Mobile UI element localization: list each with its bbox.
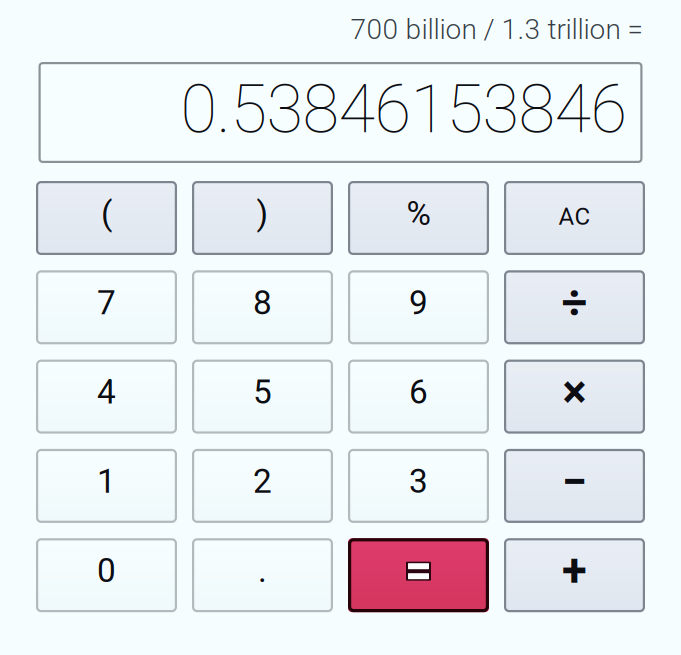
button[interactable]: 3 [348, 449, 489, 523]
button[interactable]: Equals [348, 538, 489, 612]
button[interactable]: 8 [192, 270, 333, 344]
staticText: . [258, 551, 267, 590]
staticText: 6 [409, 373, 428, 412]
button[interactable]: 1 [36, 449, 177, 523]
button[interactable]: Open parenthesis [36, 181, 177, 255]
staticText: ) [256, 194, 268, 233]
button[interactable]: 2 [192, 449, 333, 523]
button[interactable]: 6 [348, 360, 489, 434]
button[interactable]: Percent [348, 181, 489, 255]
button[interactable]: Multiply [504, 360, 645, 434]
staticText: 4 [97, 373, 116, 412]
button[interactable]: All clear [504, 181, 645, 255]
button[interactable]: Plus [504, 538, 645, 612]
staticText: AC [558, 202, 590, 230]
staticText: 5 [253, 373, 272, 412]
staticText: 700 billion / 1.3 trillion = [350, 13, 642, 46]
button[interactable]: Decimal point [192, 538, 333, 612]
staticText: 8 [253, 283, 272, 322]
button[interactable]: Minus [504, 449, 645, 523]
button[interactable]: 9 [348, 270, 489, 344]
staticText: 2 [253, 462, 272, 501]
button[interactable]: Close parenthesis [192, 181, 333, 255]
staticText: ÷ [561, 276, 587, 329]
staticText: ( [101, 194, 112, 233]
staticText: 7 [97, 283, 116, 322]
staticText: 3 [409, 462, 428, 501]
staticText: + [562, 544, 587, 597]
button[interactable]: Divide [504, 270, 645, 344]
button[interactable]: 5 [192, 360, 333, 434]
button[interactable]: 7 [36, 270, 177, 344]
staticText: 0 [97, 551, 116, 590]
staticText: 0.53846153846 [180, 70, 626, 148]
staticText: % [406, 194, 430, 233]
staticText: 1 [97, 462, 116, 501]
staticText: 9 [409, 283, 428, 322]
button[interactable]: 0 [36, 538, 177, 612]
button[interactable]: 4 [36, 360, 177, 434]
staticText: × [562, 365, 586, 419]
staticText: − [562, 455, 587, 508]
